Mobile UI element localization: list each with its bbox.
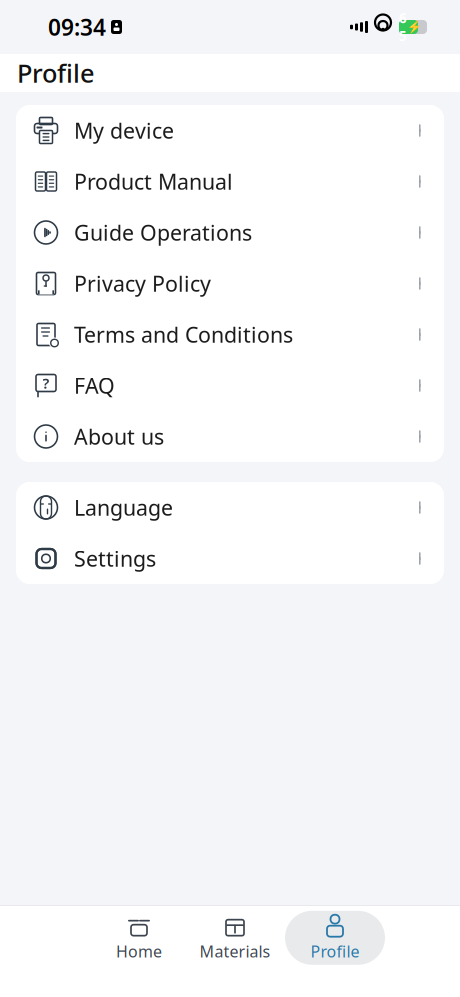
- staticText: Product Manual: [74, 167, 233, 196]
- staticText: 09:34: [48, 12, 106, 42]
- staticText: Profile: [17, 56, 95, 90]
- button[interactable]: Language: [16, 482, 444, 533]
- button[interactable]: Terms and Conditions: [16, 309, 444, 360]
- staticText: Profile: [310, 941, 359, 962]
- staticText: Materials: [199, 941, 270, 962]
- button[interactable]: My device: [16, 105, 444, 156]
- button[interactable]: Materials: [189, 911, 281, 965]
- staticText: My device: [74, 116, 174, 145]
- button[interactable]: ?: [16, 360, 444, 411]
- button[interactable]: Guide Operations: [16, 207, 444, 258]
- button[interactable]: Home: [93, 911, 185, 965]
- button[interactable]: About us: [16, 411, 444, 462]
- staticText: Settings: [74, 544, 156, 573]
- staticText: Guide Operations: [74, 218, 252, 247]
- staticText: About us: [74, 422, 164, 451]
- staticText: Terms and Conditions: [74, 320, 293, 349]
- button[interactable]: Profile: [285, 911, 385, 965]
- staticText: ?: [42, 373, 49, 393]
- staticText: Language: [74, 493, 173, 522]
- staticText: 65: [399, 9, 407, 45]
- button[interactable]: Settings: [16, 533, 444, 584]
- button[interactable]: Product Manual: [16, 156, 444, 207]
- staticText: Home: [116, 941, 162, 962]
- button[interactable]: Privacy Policy: [16, 258, 444, 309]
- staticText: FAQ: [74, 371, 115, 400]
- staticText: ⚡: [407, 20, 422, 34]
- staticText: Privacy Policy: [74, 269, 211, 298]
